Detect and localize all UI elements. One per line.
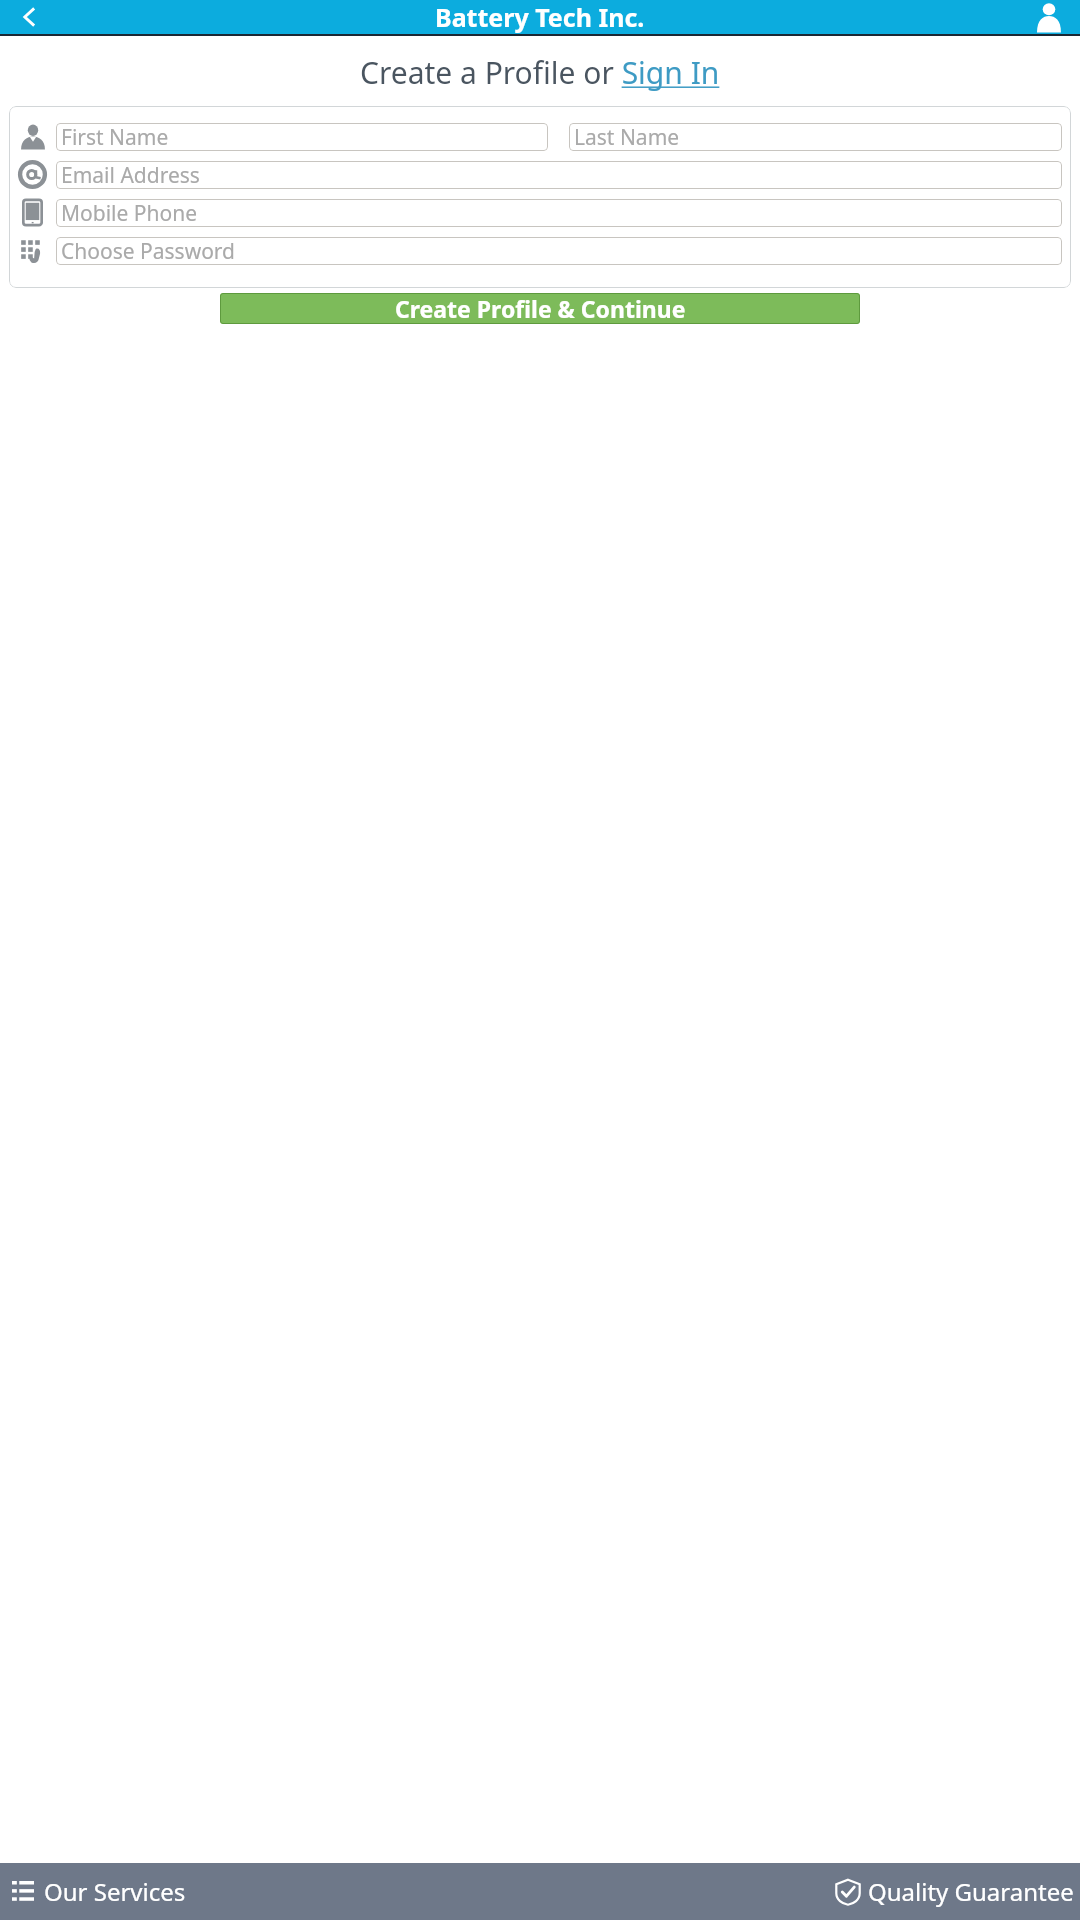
staticText: Quality Guarantee [868, 1875, 1074, 1908]
button[interactable]: Account [1026, 0, 1072, 34]
staticText: Last Name [574, 123, 680, 151]
button[interactable]: First Name [56, 123, 548, 151]
staticText: Battery Tech Inc. [435, 0, 645, 34]
staticText: First Name [61, 123, 169, 151]
button[interactable]: Create a Profile or Sign In [360, 52, 720, 93]
staticText: Choose Password [61, 237, 236, 265]
button[interactable]: Choose Password [56, 237, 1062, 265]
button[interactable]: Mobile Phone [56, 199, 1062, 227]
button[interactable]: Last Name [569, 123, 1062, 151]
button[interactable]: Quality Guarantee [540, 1863, 1080, 1920]
button[interactable]: Create Profile & Continue [220, 293, 860, 324]
staticText: Mobile Phone [61, 199, 198, 227]
staticText: Email Address [61, 161, 200, 189]
button[interactable]: Back [6, 0, 54, 34]
staticText: Our Services [44, 1875, 186, 1908]
button[interactable]: Our Services [0, 1863, 540, 1920]
staticText: Create Profile & Continue [395, 293, 686, 324]
button[interactable]: Email Address [56, 161, 1062, 189]
